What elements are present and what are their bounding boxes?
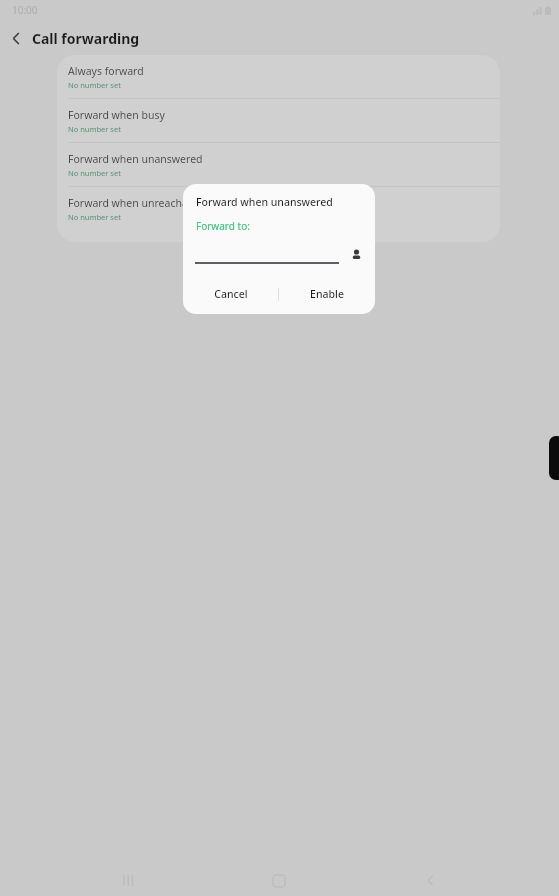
button[interactable]: Enable bbox=[279, 277, 375, 311]
staticText: Forward when busy bbox=[68, 108, 165, 122]
staticText: No number set bbox=[68, 212, 121, 222]
button[interactable]: Edge panel handle bbox=[549, 436, 559, 480]
button[interactable] bbox=[195, 244, 339, 264]
staticText: Forward when unanswered bbox=[196, 195, 333, 209]
button[interactable]: Forward when unreachable bbox=[57, 187, 500, 230]
button[interactable]: Forward when unanswered bbox=[57, 143, 500, 186]
staticText: Forward when unreachable bbox=[68, 196, 203, 210]
staticText: Forward when unanswered bbox=[68, 152, 203, 166]
staticText: Forward to: bbox=[196, 219, 250, 233]
staticText: Call forwarding bbox=[32, 29, 140, 48]
button[interactable]: Always forward bbox=[57, 55, 500, 98]
staticText: 10:00 bbox=[12, 3, 38, 17]
staticText: Always forward bbox=[68, 64, 144, 78]
staticText: No number set bbox=[68, 168, 121, 178]
button[interactable]: Cancel bbox=[183, 277, 278, 311]
button[interactable]: Back bbox=[0, 24, 32, 52]
staticText: Cancel bbox=[214, 287, 248, 301]
staticText: No number set bbox=[68, 124, 121, 134]
staticText: No number set bbox=[68, 80, 121, 90]
button[interactable]: Forward when busy bbox=[57, 99, 500, 142]
staticText: Enable bbox=[310, 287, 344, 301]
button[interactable]: Pick contact bbox=[346, 244, 366, 264]
